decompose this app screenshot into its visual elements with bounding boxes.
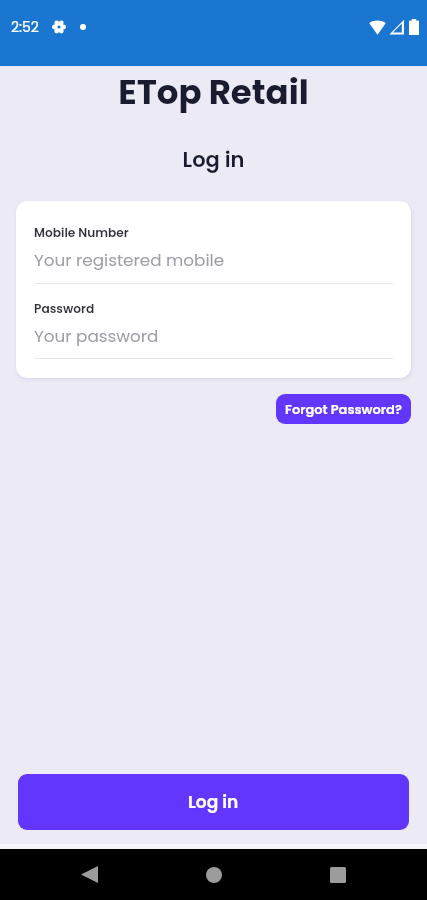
staticText: Your password bbox=[34, 324, 159, 348]
staticText: Your registered mobile bbox=[34, 248, 225, 272]
button[interactable]: Forgot Password? bbox=[276, 394, 411, 424]
staticText: 2:52 bbox=[11, 17, 39, 37]
button[interactable]: Home bbox=[143, 849, 285, 900]
button[interactable]: Recent apps bbox=[285, 849, 427, 900]
staticText: ETop Retail bbox=[0, 68, 427, 116]
staticText: Log in bbox=[188, 790, 239, 814]
staticText: Mobile Number bbox=[34, 224, 129, 241]
staticText: Log in bbox=[0, 145, 427, 174]
button[interactable]: Log in bbox=[18, 774, 409, 830]
staticText: Forgot Password? bbox=[285, 400, 402, 418]
button[interactable]: Back bbox=[0, 849, 143, 900]
staticText: Password bbox=[34, 300, 95, 317]
